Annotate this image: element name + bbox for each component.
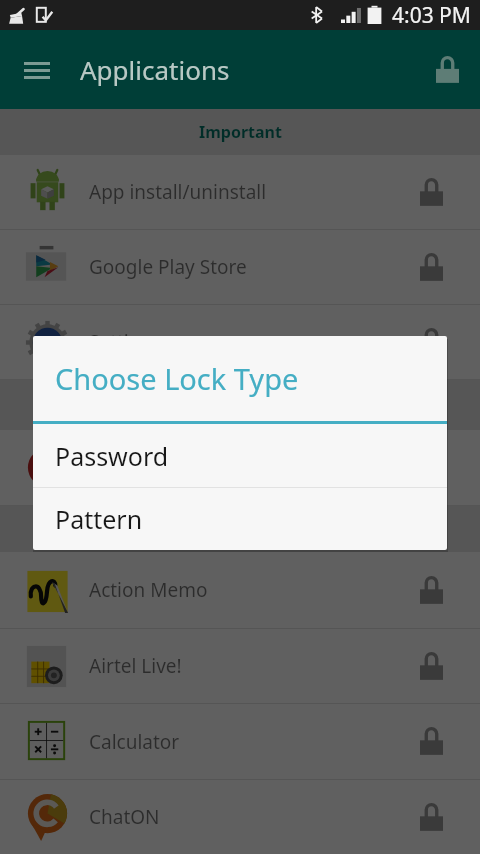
- staticText: Important: [199, 121, 282, 143]
- staticText: App install/uninstall: [89, 179, 267, 205]
- button[interactable]: Lock applications: [424, 47, 470, 93]
- button[interactable]: Airtel Live!: [0, 629, 480, 704]
- button[interactable]: App install/uninstall: [0, 155, 480, 230]
- button[interactable]: Google Play Store: [0, 230, 480, 305]
- button[interactable]: AllShare Play: [0, 430, 480, 506]
- staticText: Pattern: [55, 502, 143, 536]
- button[interactable]: ChatON: [0, 780, 480, 854]
- staticText: Google Play Store: [89, 254, 247, 280]
- staticText: Calculator: [89, 729, 180, 755]
- button[interactable]: Settings: [0, 305, 480, 380]
- staticText: Password: [55, 439, 169, 473]
- staticText: Applications: [80, 52, 230, 87]
- button[interactable]: Calculator: [0, 704, 480, 780]
- staticText: 4:03 PM: [392, 1, 471, 30]
- staticText: Settings: [89, 329, 162, 355]
- staticText: Airtel Live!: [89, 653, 182, 679]
- button[interactable]: Password: [33, 424, 447, 487]
- button[interactable]: Action Memo: [0, 552, 480, 629]
- staticText: Action Memo: [89, 577, 208, 603]
- staticText: Choose Lock Type: [55, 359, 299, 398]
- button[interactable]: Pattern: [33, 488, 447, 550]
- staticText: AllShare Play: [89, 455, 204, 481]
- button[interactable]: Open navigation drawer: [11, 44, 63, 96]
- staticText: ChatON: [89, 804, 160, 830]
